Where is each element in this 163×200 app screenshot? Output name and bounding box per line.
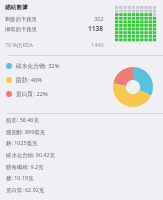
- staticText: 鈉: 1025毫克: [6, 139, 38, 146]
- staticText: 剩餘的卡路里: [5, 16, 38, 23]
- staticText: 蛋白質: 62.92克: [6, 186, 45, 193]
- staticText: 1440: [91, 41, 104, 49]
- staticText: 79 %的RDA: [5, 41, 34, 48]
- staticText: 脂肪: 58.46克: [6, 116, 39, 123]
- staticText: 糖: 10.19克: [6, 174, 34, 181]
- button[interactable]: 碳水化合物: 32%: [6, 62, 163, 70]
- button[interactable]: 蛋白質: 62.92克: [0, 183, 163, 195]
- button[interactable]: 脂肪: 46%: [6, 76, 163, 84]
- button[interactable]: 鈉: 1025毫克: [0, 136, 163, 148]
- staticText: 總結數據: [5, 4, 28, 11]
- staticText: 碳水化合物: 32%: [16, 62, 60, 70]
- staticText: 蛋白質: 22%: [16, 90, 48, 98]
- button[interactable]: 脂肪: 58.46克: [0, 113, 163, 125]
- staticText: 膽固醇: 899毫克: [6, 128, 46, 135]
- staticText: 碳水化合物: 90.42克: [6, 151, 55, 158]
- button[interactable]: 糖: 10.19克: [0, 171, 163, 183]
- button[interactable]: 蛋白質: 22%: [6, 90, 163, 98]
- button[interactable]: 碳水化合物: 90.42克: [0, 148, 163, 160]
- button[interactable]: 剩餘的卡路里: [5, 15, 104, 23]
- staticText: 302: [94, 15, 104, 23]
- staticText: 脂肪: 46%: [16, 76, 43, 84]
- other: Macronutrient chart: [113, 67, 153, 107]
- button[interactable]: 膳食纖維: 9.2克: [0, 160, 163, 172]
- button[interactable]: 攝取的卡路里: [5, 24, 104, 33]
- staticText: 1138: [88, 24, 104, 33]
- staticText: 膳食纖維: 9.2克: [6, 163, 44, 170]
- button[interactable]: 膽固醇: 899毫克: [0, 125, 163, 137]
- staticText: 攝取的卡路里: [5, 26, 38, 33]
